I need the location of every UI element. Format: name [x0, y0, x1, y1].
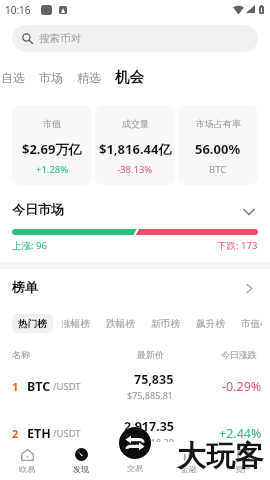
staticText: 跌幅榜 [106, 318, 135, 330]
staticText: ETH [27, 425, 51, 442]
button[interactable]: 交易 [119, 427, 151, 459]
button[interactable]: 涨幅榜 [53, 314, 98, 333]
button[interactable]: 自选 [0, 70, 32, 85]
button[interactable]: 新币榜 [143, 314, 188, 333]
staticText: 飙升榜 [196, 318, 225, 330]
staticText: 1 [12, 379, 19, 394]
staticText: 自选 [1, 70, 25, 85]
button[interactable]: 市值 [12, 105, 92, 185]
staticText: +2.44% [219, 425, 262, 442]
staticText: 发现 [73, 464, 89, 474]
staticText: 今日涨跌 [164, 349, 257, 360]
staticText: 市场占有率 [196, 118, 241, 129]
staticText: 名称 [12, 349, 30, 360]
staticText: 涨幅榜 [61, 318, 90, 330]
staticText: 资产 [235, 464, 251, 474]
staticText: -38.13% [117, 163, 153, 176]
button[interactable]: 飙升榜 [188, 314, 233, 333]
staticText: BTC [209, 163, 227, 176]
button[interactable]: 精选 [70, 70, 108, 85]
staticText: /USDT [53, 380, 81, 393]
button[interactable]: 跌幅榜 [98, 314, 143, 333]
staticText: /USDT [53, 427, 81, 440]
button[interactable]: 资产 [216, 442, 270, 480]
staticText: 欧易 [19, 464, 35, 474]
staticText: 机会 [115, 68, 144, 86]
staticText: 大玩客 [177, 438, 264, 475]
button[interactable]: 成交量 [95, 105, 175, 185]
staticText: 搜索币对 [39, 32, 81, 45]
staticText: 56.00% [195, 140, 241, 158]
button[interactable]: 欧易 [0, 442, 54, 480]
button[interactable]: 市场 [32, 70, 70, 85]
staticText: +1.28% [36, 163, 69, 176]
staticText: 2 [12, 426, 19, 441]
button[interactable]: 今日市场 [12, 200, 258, 218]
button[interactable]: 榜单 [12, 278, 258, 296]
staticText: 上涨: 96 [12, 239, 47, 252]
button[interactable]: 2 [12, 418, 262, 448]
button[interactable]: 交易 [108, 442, 162, 480]
staticText: 交易 [127, 463, 143, 473]
staticText: 下跌: 173 [217, 239, 258, 252]
staticText: $2,918.30 [133, 436, 174, 448]
staticText: 热门榜 [18, 318, 47, 330]
button[interactable]: 搜索币对 [12, 25, 258, 52]
staticText: 2,917.35 [124, 418, 174, 435]
staticText: 最新价 [102, 349, 164, 360]
button[interactable]: 机会 [108, 68, 151, 86]
button[interactable]: 市值榜 [233, 314, 270, 333]
staticText: 成交量 [122, 118, 149, 129]
staticText: 榜单 [12, 279, 38, 295]
staticText: 今日市场 [12, 201, 64, 217]
button[interactable]: 1 [12, 371, 262, 401]
staticText: 新币榜 [151, 318, 180, 330]
button[interactable]: 市场占有率 [178, 105, 258, 185]
button[interactable]: 热门榜 [12, 314, 53, 333]
staticText: $75,885.81 [127, 389, 174, 401]
staticText: 市场 [39, 70, 63, 85]
staticText: BTC [27, 378, 51, 395]
button[interactable]: 发现 [54, 442, 108, 480]
staticText: $1,816.44亿 [99, 140, 172, 158]
staticText: $2.69万亿 [22, 140, 82, 158]
staticText: 75,835 [134, 371, 174, 388]
staticText: 金融 [181, 464, 197, 474]
staticText: -0.29% [222, 378, 262, 395]
button[interactable]: 金融 [162, 442, 216, 480]
staticText: 市值榜 [241, 318, 262, 330]
staticText: 10:16 [5, 3, 31, 17]
staticText: 市值 [43, 118, 61, 129]
staticText: 精选 [77, 70, 101, 85]
